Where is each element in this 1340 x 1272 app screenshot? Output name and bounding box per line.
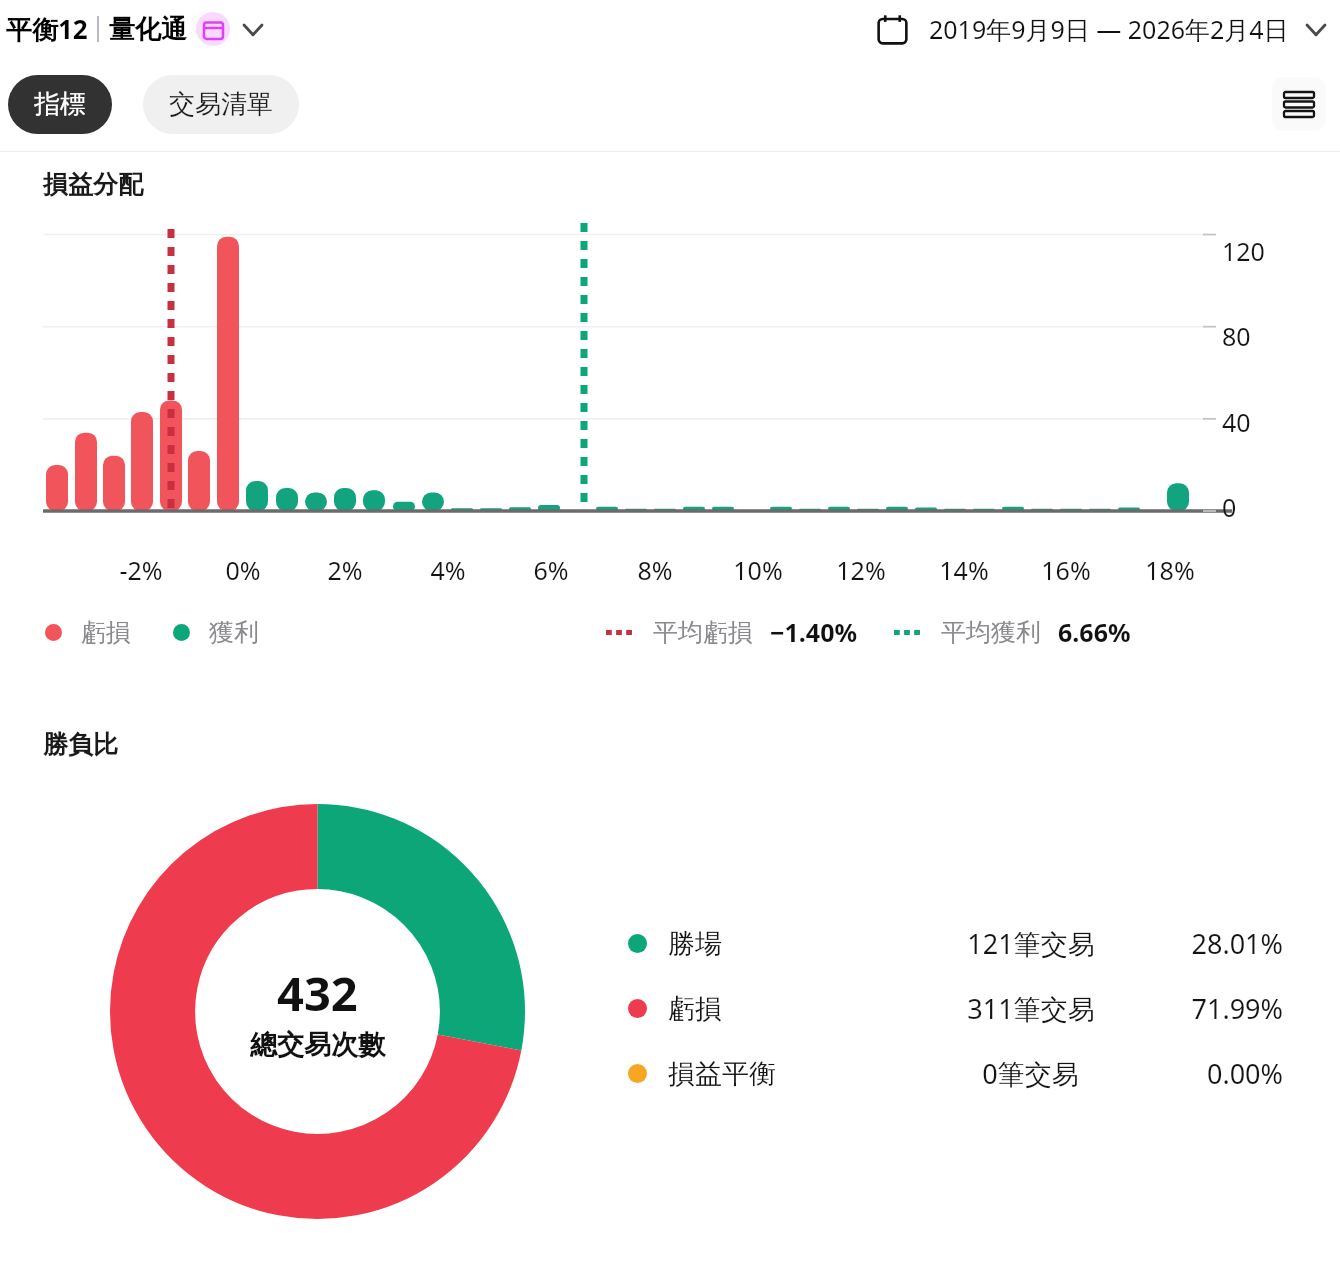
staticText: 120 — [1222, 234, 1265, 268]
staticText: 總交易次數 — [250, 1028, 385, 1062]
button[interactable]: 指標 — [8, 75, 112, 134]
staticText: 311筆交易 — [967, 990, 1095, 1027]
staticText: 損益平衡 — [668, 1057, 776, 1091]
staticText: 40 — [1222, 405, 1251, 439]
staticText: 8% — [637, 553, 673, 587]
staticText: 121筆交易 — [967, 925, 1095, 962]
staticText: -2% — [119, 553, 163, 587]
button[interactable]: 清單檢視 — [1272, 77, 1326, 131]
staticText: 28.01% — [1191, 925, 1283, 962]
staticText: 71.99% — [1191, 990, 1283, 1027]
button[interactable]: 勝場 — [628, 925, 1283, 962]
staticText: 80 — [1222, 319, 1251, 353]
staticText: 0 — [1222, 490, 1237, 524]
staticText: 交易清單 — [169, 88, 273, 121]
staticText: 虧損 — [81, 617, 131, 648]
staticText: 虧損 — [668, 992, 722, 1026]
staticText: 0.00% — [1206, 1055, 1283, 1092]
staticText: 6% — [533, 553, 569, 587]
button[interactable]: 虧損 — [628, 990, 1283, 1027]
staticText: 量化通 — [109, 13, 187, 46]
button[interactable]: 平衡12 — [6, 11, 263, 47]
button[interactable]: 交易清單 — [143, 75, 299, 134]
staticText: 18% — [1145, 553, 1195, 587]
staticText: 16% — [1041, 553, 1091, 587]
staticText: 10% — [733, 553, 783, 587]
button[interactable]: 選擇日期 — [876, 12, 1326, 46]
staticText: 2% — [327, 553, 363, 587]
staticText: 4% — [430, 553, 466, 587]
staticText: 平均獲利 — [941, 617, 1041, 648]
staticText: 0筆交易 — [982, 1055, 1079, 1092]
staticText: 獲利 — [209, 617, 259, 648]
staticText: 平衡12 — [6, 11, 88, 47]
other: 選擇日期 — [876, 13, 909, 46]
button[interactable]: 損益平衡 — [628, 1055, 1283, 1092]
staticText: −1.40% — [770, 615, 858, 649]
staticText: 6.66% — [1058, 615, 1131, 649]
staticText: 平均虧損 — [653, 617, 753, 648]
staticText: 勝場 — [668, 927, 722, 961]
staticText: 指標 — [34, 88, 86, 121]
staticText: 0% — [225, 553, 261, 587]
staticText: 12% — [836, 553, 886, 587]
staticText: 14% — [939, 553, 989, 587]
staticText: 432 — [277, 961, 358, 1025]
staticText: 勝負比 — [43, 729, 118, 760]
staticText: 2019年9月9日 — 2026年2月4日 — [929, 12, 1289, 46]
staticText: 損益分配 — [43, 169, 143, 200]
